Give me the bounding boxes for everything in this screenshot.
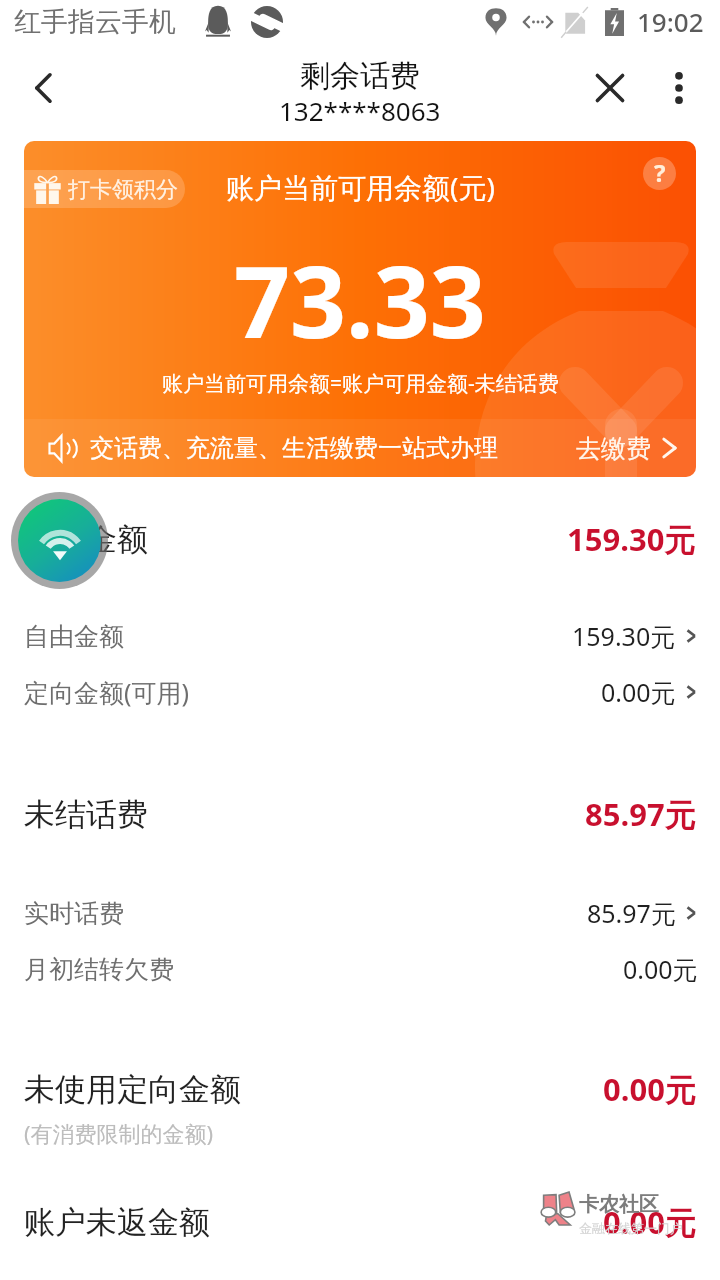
button[interactable]: Back (14, 58, 74, 118)
button[interactable]: Close (580, 58, 640, 118)
button[interactable]: Help (643, 157, 676, 190)
button[interactable]: Assistive touch (11, 492, 108, 589)
staticText: 未结话费 (24, 795, 148, 834)
staticText: 0.00元 (603, 1201, 696, 1243)
staticText: 去缴费 (576, 433, 651, 464)
button[interactable]: 实时话费 (0, 889, 720, 937)
staticText: 交话费、充流量、生活缴费一站式办理 (90, 433, 498, 463)
staticText: 0.00元 (623, 952, 698, 986)
button[interactable]: 打卡领积分 (24, 141, 696, 477)
staticText: 159.30元 (572, 619, 676, 653)
staticText: 0.00元 (601, 675, 676, 709)
button[interactable]: 交话费、充流量、生活缴费一站式办理 (48, 419, 677, 477)
staticText: 85.97元 (587, 896, 676, 930)
button[interactable]: 未使用定向金额 (0, 1063, 720, 1115)
staticText: 159.30元 (567, 518, 696, 560)
button[interactable]: 月初结转欠费 (0, 945, 720, 993)
staticText: 账户未返金额 (24, 1203, 210, 1242)
staticText: 定向金额(可用) (24, 675, 190, 709)
staticText: 19:02 (637, 4, 704, 39)
staticText: 卡农社区 (579, 1192, 659, 1217)
staticText: (有消费限制的金额) (24, 1118, 214, 1148)
staticText: 85.97元 (585, 793, 696, 835)
staticText: 自由金额 (24, 621, 124, 652)
button[interactable]: 未结话费 (0, 788, 720, 840)
button[interactable]: 自由金额 (0, 612, 720, 660)
staticText: 金融在线第一门户 (579, 1220, 683, 1236)
staticText: 月初结转欠费 (24, 954, 174, 985)
staticText: 0.00元 (603, 1068, 696, 1110)
button[interactable]: 账户未返金额 (0, 1196, 720, 1248)
staticText: 实时话费 (24, 898, 124, 929)
button[interactable]: More options (649, 58, 709, 118)
staticText: 73.33 (234, 233, 486, 366)
staticText: 132****8063 (279, 93, 441, 128)
staticText: 红手指云手机 (14, 5, 176, 39)
staticText: 账户当前可用余额(元) (226, 168, 495, 206)
staticText: 可用金额 (24, 520, 148, 559)
button[interactable]: 定向金额(可用) (0, 668, 720, 716)
staticText: 打卡领积分 (68, 176, 178, 204)
staticText: 未使用定向金额 (24, 1070, 241, 1109)
staticText: ? (654, 157, 666, 189)
staticText: 账户当前可用余额=账户可用金额-未结话费 (162, 369, 559, 398)
button[interactable]: 可用金额 (0, 513, 720, 565)
staticText: 剩余话费 (300, 57, 420, 95)
button[interactable]: 打卡领积分 (34, 170, 178, 208)
